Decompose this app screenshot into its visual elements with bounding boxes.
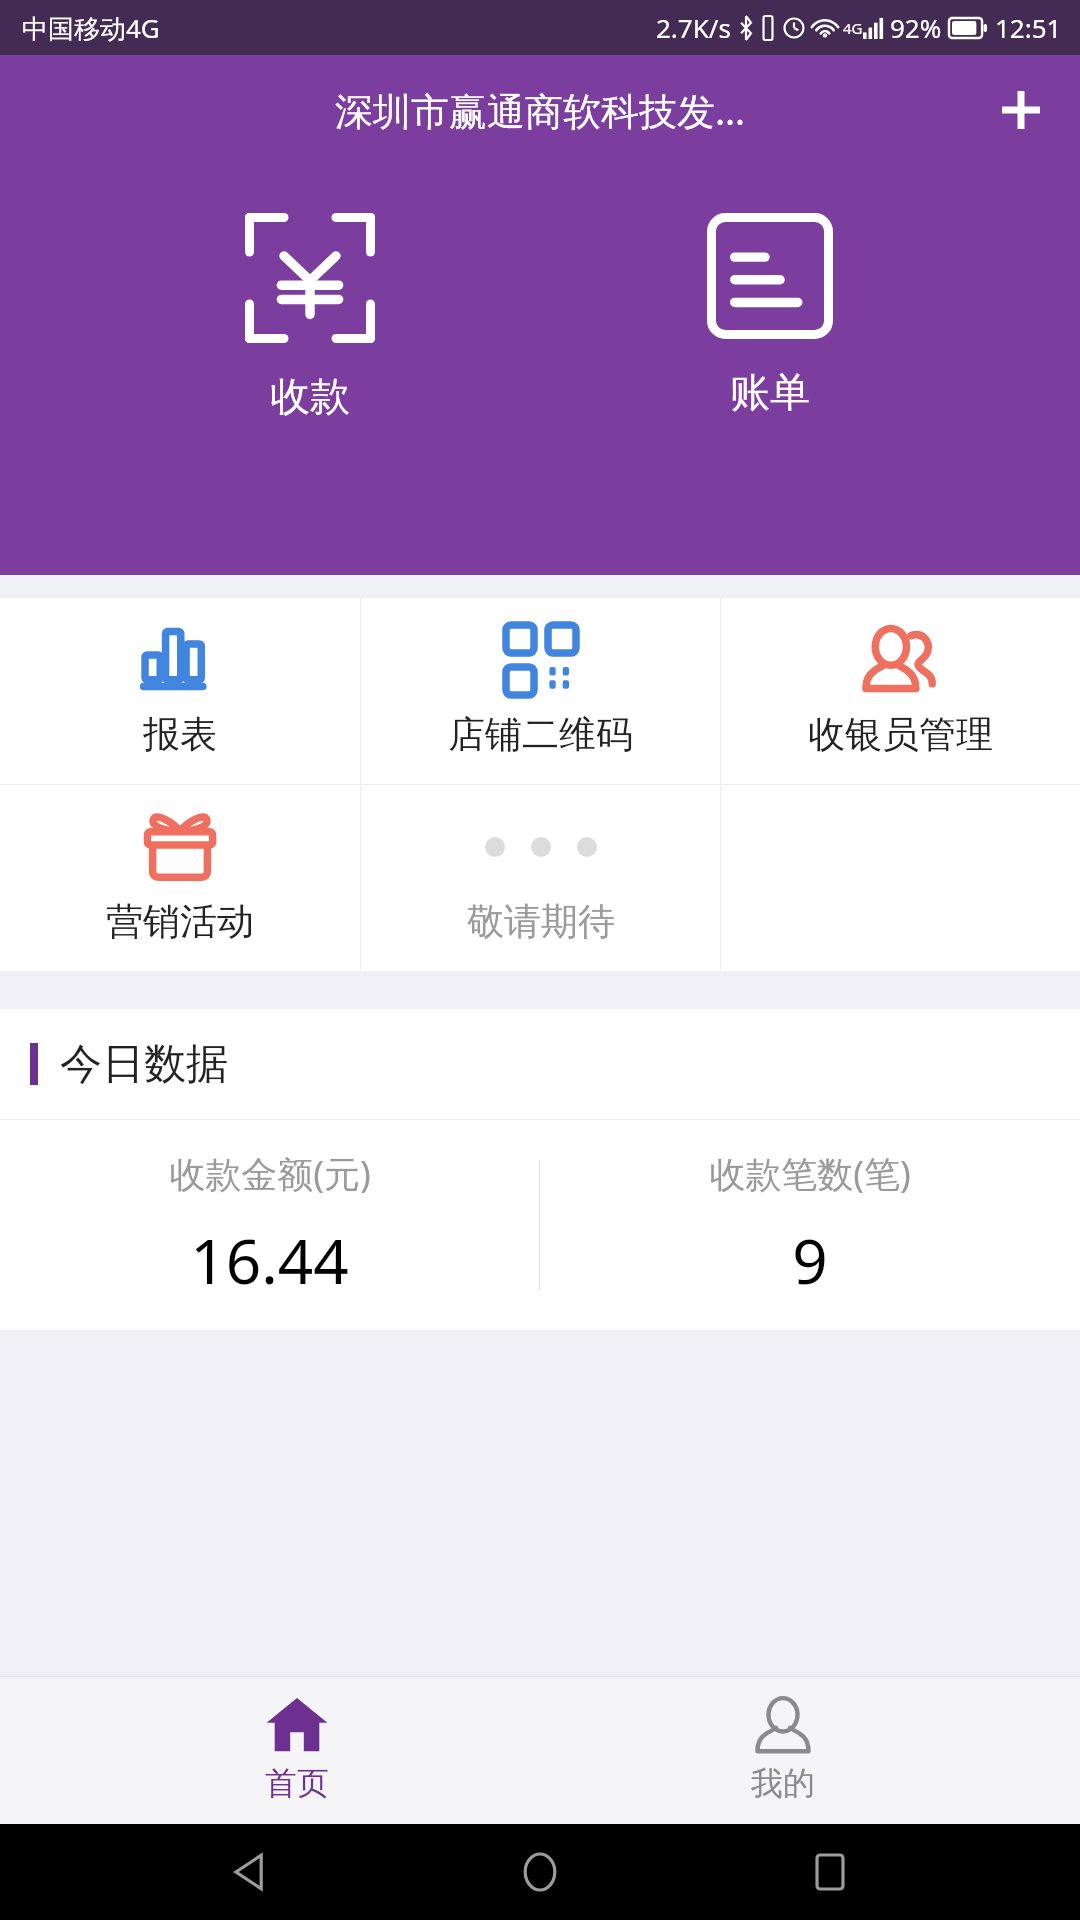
button[interactable]: 店铺二维码 <box>361 598 720 784</box>
staticText: 2.7K/s <box>656 10 731 45</box>
staticText: 收款金额(元) <box>169 1149 371 1198</box>
staticText: 16.44 <box>190 1218 349 1302</box>
button[interactable]: 首页 <box>107 1676 487 1824</box>
button[interactable]: 账单 <box>620 205 920 425</box>
staticText: 中国移动4G <box>22 10 160 46</box>
button[interactable]: 敬请期待 <box>361 785 720 971</box>
button[interactable]: Add <box>988 77 1054 143</box>
button[interactable]: Home <box>500 1832 580 1912</box>
button[interactable]: 收银员管理 <box>721 598 1080 784</box>
staticText: 深圳市赢通商软科技发… <box>335 84 746 136</box>
staticText: 12:51 <box>995 10 1062 45</box>
staticText: 收款 <box>270 371 350 421</box>
staticText: 营销活动 <box>106 898 254 945</box>
staticText: 今日数据 <box>60 1038 228 1091</box>
staticText: 敬请期待 <box>467 898 615 945</box>
staticText: 店铺二维码 <box>448 711 633 758</box>
staticText: 收银员管理 <box>808 711 993 758</box>
staticText: 首页 <box>265 1763 329 1803</box>
staticText: 4G <box>843 18 863 38</box>
button[interactable]: 我的 <box>593 1676 973 1824</box>
button[interactable]: 营销活动 <box>0 785 360 971</box>
staticText: 收款笔数(笔) <box>709 1149 911 1198</box>
button[interactable]: Recents <box>790 1832 870 1912</box>
staticText: 账单 <box>730 367 810 417</box>
staticText: 9 <box>792 1218 828 1302</box>
staticText: 我的 <box>751 1763 815 1803</box>
staticText: 92% <box>890 10 942 45</box>
staticText: 报表 <box>143 711 217 758</box>
button[interactable]: Back <box>210 1832 290 1912</box>
button[interactable]: 报表 <box>0 598 360 784</box>
button[interactable]: 收款 <box>160 205 460 429</box>
